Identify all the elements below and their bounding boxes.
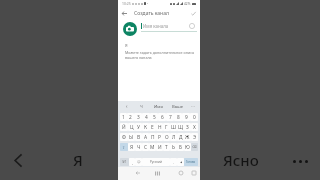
button[interactable]: Ф	[120, 133, 128, 141]
button[interactable]: 7	[166, 113, 174, 121]
staticText: .	[173, 160, 174, 165]
button[interactable]: П	[149, 133, 156, 141]
button[interactable]: 8	[174, 113, 182, 121]
button[interactable]: 6	[158, 113, 166, 121]
staticText: А	[144, 134, 148, 141]
button[interactable]: Ь	[170, 143, 177, 151]
staticText: В	[137, 134, 141, 141]
button[interactable]: Русский	[142, 158, 170, 166]
button[interactable]: Д	[177, 133, 184, 141]
staticText: 0	[193, 114, 196, 121]
button[interactable]: 2	[127, 113, 134, 121]
button[interactable]: Recents	[152, 168, 162, 178]
button[interactable]: Г	[163, 123, 170, 131]
button[interactable]: More options	[284, 145, 316, 177]
button[interactable]: Hide keyboard	[133, 168, 143, 178]
button[interactable]: ⌫	[191, 143, 198, 151]
staticText: Ф	[122, 134, 126, 141]
button[interactable]: Е	[149, 123, 156, 131]
button[interactable]: Ш	[170, 123, 177, 131]
button[interactable]: 3	[134, 113, 142, 121]
button[interactable]: О	[163, 133, 170, 141]
staticText: Русский	[150, 160, 162, 164]
staticText: Н	[158, 124, 162, 131]
staticText: Й	[122, 124, 126, 131]
button[interactable]: 4	[142, 113, 150, 121]
button[interactable]: Готово	[184, 158, 198, 166]
button[interactable]: Navigate up	[118, 7, 130, 19]
button[interactable]: Я	[62, 144, 94, 176]
staticText: Ь	[172, 144, 175, 151]
button[interactable]: Щ	[177, 123, 184, 131]
staticText: Ц	[130, 124, 134, 131]
button[interactable]: Х	[191, 123, 198, 131]
button[interactable]: Channel photo	[123, 22, 137, 36]
button[interactable]: С	[142, 143, 149, 151]
staticText: Ч	[137, 144, 141, 151]
button[interactable]: !#1	[120, 158, 129, 166]
button[interactable]: ,	[129, 158, 135, 166]
staticText: Ю	[185, 144, 190, 151]
staticText: О	[165, 134, 169, 141]
staticText: !#1	[122, 160, 127, 164]
staticText: Ваше	[172, 104, 184, 110]
button[interactable]: Done	[187, 7, 199, 19]
staticText: Ы	[129, 134, 134, 141]
staticText: 9	[185, 114, 188, 121]
staticText: Л	[172, 134, 176, 141]
button[interactable]: У	[135, 123, 142, 131]
button[interactable]: ◀	[177, 158, 184, 166]
button[interactable]: Ц	[128, 123, 135, 131]
button[interactable]: В	[135, 133, 142, 141]
staticText: 6	[161, 114, 164, 121]
staticText: ⌫	[192, 145, 197, 149]
button[interactable]: .	[170, 158, 177, 166]
button[interactable]: Ю	[184, 143, 191, 151]
staticText: К	[144, 124, 147, 131]
staticText: Готово	[186, 160, 196, 164]
button[interactable]: 9	[182, 113, 190, 121]
button[interactable]: Back	[2, 144, 34, 176]
staticText: 10:25	[122, 1, 131, 6]
staticText: Е	[151, 124, 154, 131]
staticText: 8	[177, 114, 180, 121]
button[interactable]: Т	[163, 143, 170, 151]
button[interactable]: Clear	[189, 23, 195, 29]
staticText: Я	[73, 150, 83, 170]
button[interactable]: Ы	[128, 133, 135, 141]
button[interactable]: Home	[176, 168, 186, 178]
button[interactable]: Ч	[135, 143, 142, 151]
button[interactable]: Э	[191, 133, 198, 141]
button[interactable]: М	[149, 143, 156, 151]
button[interactable]: З	[184, 123, 191, 131]
staticText: Т	[165, 144, 168, 151]
staticText: Х	[193, 124, 196, 131]
staticText: 2	[129, 114, 132, 121]
button[interactable]: Ясно	[214, 144, 268, 176]
button[interactable]: Н	[156, 123, 163, 131]
staticText: ⇧	[122, 145, 126, 149]
staticText: Р	[158, 134, 161, 141]
button[interactable]: Б	[177, 143, 184, 151]
staticText: 4	[145, 114, 148, 121]
button[interactable]: К	[142, 123, 149, 131]
staticText: Г	[165, 124, 168, 131]
button[interactable]: И	[156, 143, 163, 151]
button[interactable]: Switch keyboard	[189, 168, 199, 178]
button[interactable]: ☺	[135, 158, 142, 166]
button[interactable]: Й	[120, 123, 128, 131]
button[interactable]: 5	[150, 113, 158, 121]
staticText: 7	[169, 114, 172, 121]
button[interactable]: ⇧	[120, 143, 128, 151]
staticText: П	[151, 134, 155, 141]
staticText: Ясно	[223, 150, 259, 170]
button[interactable]: 0	[190, 113, 198, 121]
button[interactable]: Л	[170, 133, 177, 141]
button[interactable]: Я	[128, 143, 135, 151]
staticText: ☺	[137, 160, 141, 164]
button[interactable]: Ж	[184, 133, 191, 141]
button[interactable]: А	[142, 133, 149, 141]
button[interactable]: Р	[156, 133, 163, 141]
button[interactable]: 1	[120, 113, 127, 121]
staticText: 3	[137, 114, 140, 121]
